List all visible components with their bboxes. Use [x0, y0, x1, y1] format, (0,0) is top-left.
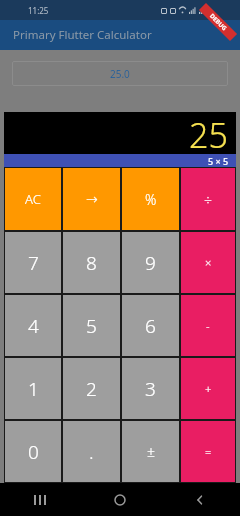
staticText: AC [25, 190, 41, 208]
staticText: = [205, 444, 212, 459]
button[interactable]: 5 [63, 295, 120, 356]
staticText: - [206, 318, 210, 333]
staticText: . [89, 439, 94, 465]
button[interactable]: 25.0 [12, 61, 228, 86]
staticText: 6 [145, 313, 156, 339]
staticText: 3 [145, 376, 156, 402]
button[interactable]: Back [160, 483, 240, 516]
staticText: 25 [189, 112, 228, 154]
staticText: ± [147, 442, 155, 461]
button[interactable]: → [63, 168, 120, 230]
staticText: 5 [86, 313, 97, 339]
staticText: 25.0 [110, 67, 130, 81]
button[interactable]: 6 [122, 295, 179, 356]
button[interactable]: 8 [63, 232, 120, 293]
staticText: DEBUG [208, 12, 229, 33]
staticText: ÷ [204, 190, 212, 209]
staticText: % [145, 190, 157, 209]
staticText: 7 [28, 250, 39, 276]
staticText: 0 [28, 439, 39, 465]
button[interactable]: ± [122, 421, 179, 482]
staticText: 8 [86, 250, 97, 276]
staticText: Primary Flutter Calculator [13, 27, 152, 43]
button[interactable]: Home [80, 483, 160, 516]
button[interactable]: 7 [5, 232, 61, 293]
staticText: → [86, 191, 98, 207]
button[interactable]: ÷ [181, 168, 235, 230]
staticText: 4 [28, 313, 39, 339]
staticText: 11:25 [28, 5, 49, 16]
button[interactable]: - [181, 295, 235, 356]
staticText: 2 [86, 376, 97, 402]
button[interactable]: 2 [63, 358, 120, 419]
staticText: 1 [28, 376, 39, 402]
button[interactable]: 0 [5, 421, 61, 482]
button[interactable]: × [181, 232, 235, 293]
button[interactable]: = [181, 421, 235, 482]
staticText: + [205, 381, 212, 396]
button[interactable]: 3 [122, 358, 179, 419]
button[interactable]: AC [5, 168, 61, 230]
button[interactable]: 1 [5, 358, 61, 419]
button[interactable]: 9 [122, 232, 179, 293]
button[interactable]: Recents [0, 483, 80, 516]
staticText: 9 [145, 250, 156, 276]
staticText: 5 × 5 [208, 155, 229, 167]
button[interactable]: % [122, 168, 179, 230]
staticText: × [205, 255, 212, 270]
button[interactable]: + [181, 358, 235, 419]
button[interactable]: 4 [5, 295, 61, 356]
